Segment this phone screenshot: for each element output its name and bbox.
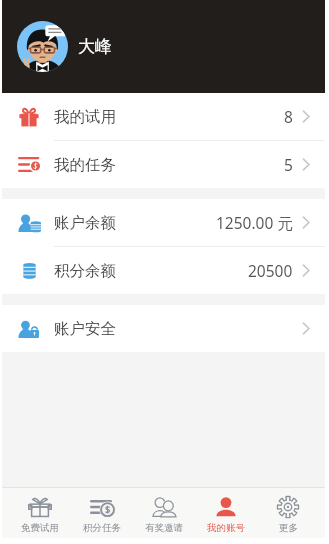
staticText: 我的任务 bbox=[54, 155, 116, 175]
staticText: 免费试用 bbox=[21, 522, 59, 534]
button[interactable]: 免费试用 bbox=[8, 488, 71, 538]
button[interactable]: 更多 bbox=[257, 488, 319, 538]
button[interactable]: 有奖邀请 bbox=[133, 488, 195, 538]
staticText: 积分余额 bbox=[54, 261, 116, 281]
staticText: 我的试用 bbox=[54, 107, 116, 127]
button[interactable]: 我的任务 bbox=[2, 141, 325, 188]
button[interactable]: 账户余额 bbox=[2, 199, 325, 246]
staticText: 我的账号 bbox=[207, 522, 245, 534]
button[interactable]: 账户安全 bbox=[2, 305, 325, 352]
staticText: 5 bbox=[284, 154, 293, 175]
staticText: 积分任务 bbox=[83, 522, 121, 534]
staticText: 账户余额 bbox=[54, 213, 116, 233]
staticText: 账户安全 bbox=[54, 319, 116, 339]
staticText: 20500 bbox=[248, 260, 293, 281]
staticText: 大峰 bbox=[78, 36, 112, 57]
staticText: 有奖邀请 bbox=[145, 522, 183, 534]
button[interactable]: 积分任务 bbox=[71, 488, 133, 538]
staticText: 1250.00 元 bbox=[216, 212, 293, 233]
staticText: 8 bbox=[284, 106, 293, 127]
button[interactable]: 我的试用 bbox=[2, 93, 325, 140]
button[interactable]: 积分余额 bbox=[2, 247, 325, 294]
staticText: 更多 bbox=[279, 522, 298, 534]
button[interactable]: 我的账号 bbox=[195, 488, 257, 538]
